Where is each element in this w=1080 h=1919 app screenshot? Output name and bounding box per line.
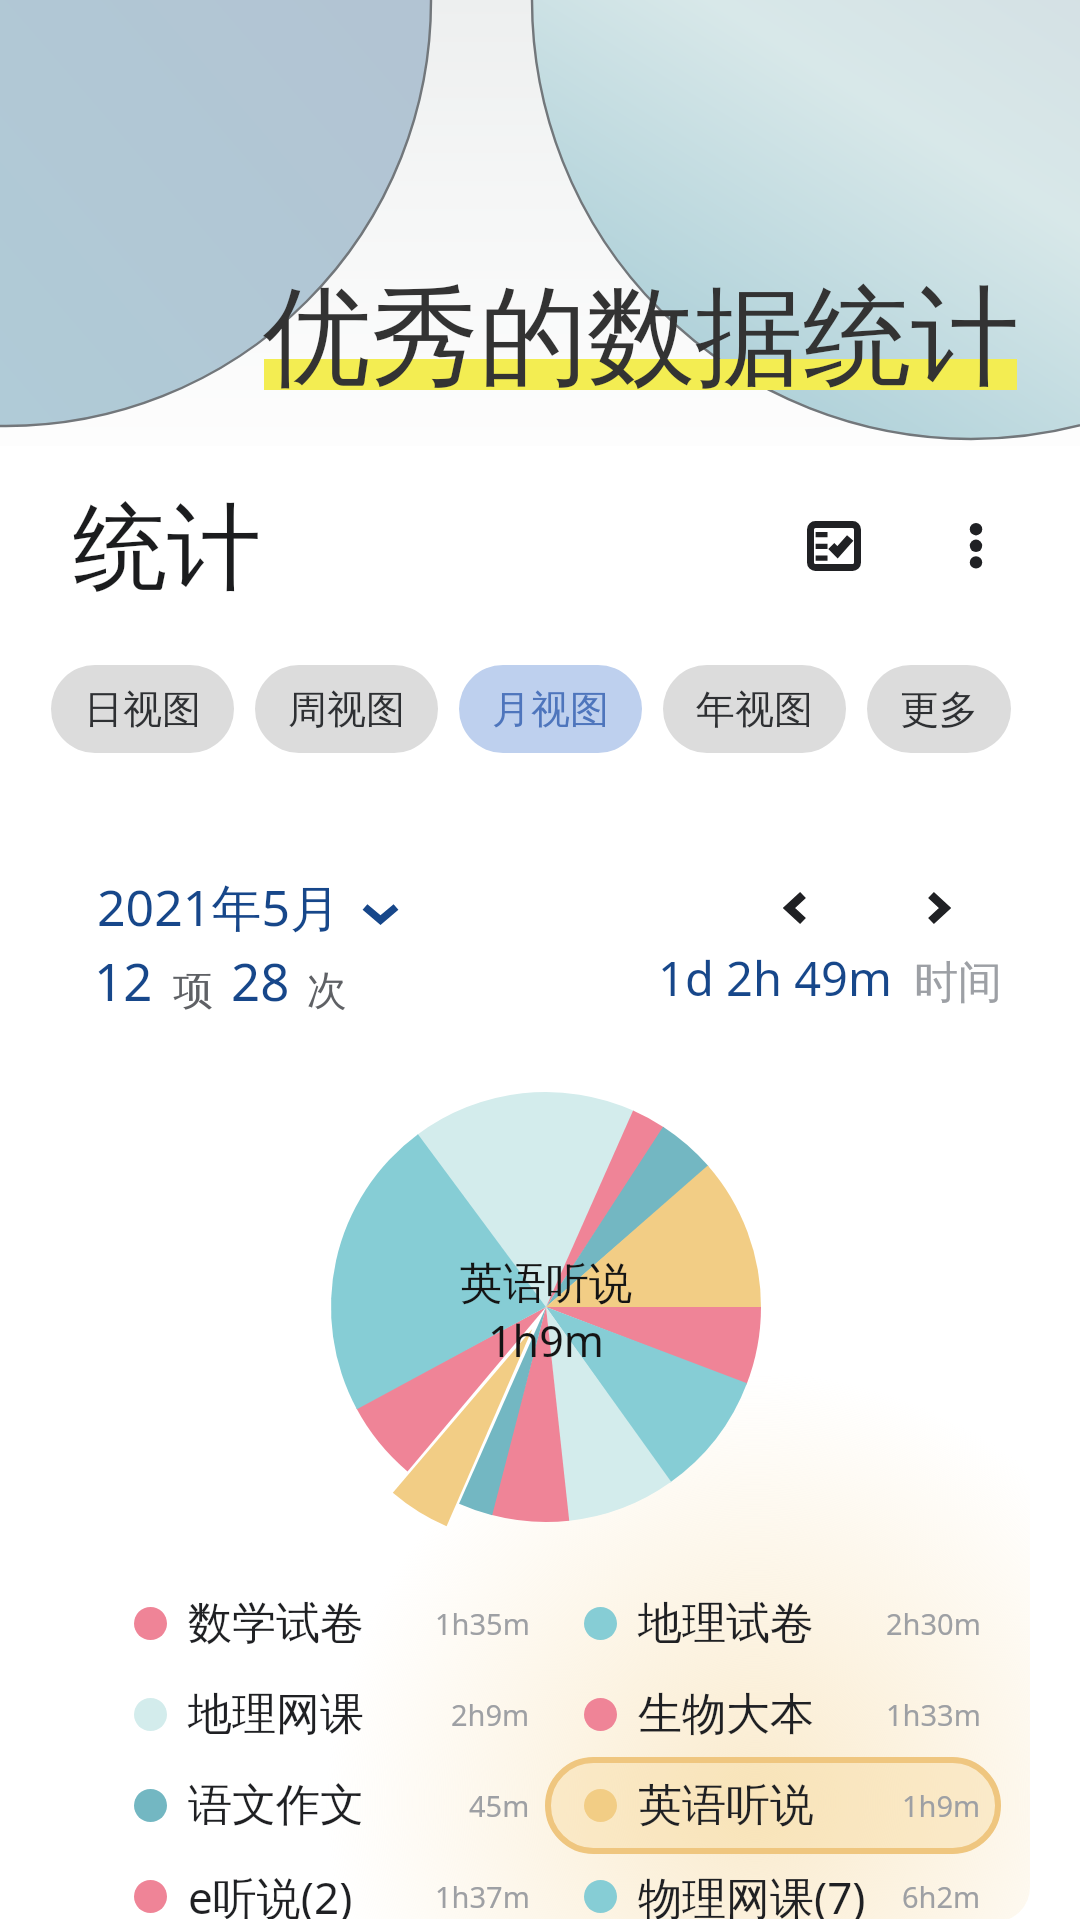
- staticText: 2h9m: [451, 1695, 530, 1734]
- staticText: 月视图: [492, 685, 609, 734]
- staticText: 日视图: [84, 685, 201, 734]
- staticText: 6h2m: [902, 1877, 981, 1916]
- staticText: 次: [307, 965, 347, 1015]
- button[interactable]: 物理网课(7): [567, 1851, 1018, 1919]
- button[interactable]: Task list: [780, 518, 888, 626]
- button[interactable]: Previous month: [746, 858, 846, 958]
- staticText: 年视图: [696, 685, 813, 734]
- staticText: 统计: [73, 489, 261, 607]
- staticText: e听说(2): [188, 1867, 353, 1919]
- staticText: 物理网课(7): [638, 1867, 866, 1919]
- button[interactable]: 生物大本: [567, 1669, 1018, 1760]
- staticText: 2021年5月: [97, 873, 340, 941]
- staticText: 周视图: [288, 685, 405, 734]
- staticText: 语文作文: [188, 1778, 364, 1833]
- staticText: 生物大本: [638, 1687, 814, 1742]
- staticText: 1h35m: [435, 1604, 530, 1643]
- button[interactable]: 地理试卷: [567, 1578, 1018, 1669]
- staticText: 地理网课: [188, 1687, 364, 1742]
- staticText: 项: [173, 965, 213, 1015]
- button[interactable]: 月视图: [459, 665, 642, 753]
- staticText: 地理试卷: [638, 1596, 814, 1651]
- button[interactable]: 年视图: [663, 665, 846, 753]
- button[interactable]: 语文作文: [117, 1760, 567, 1851]
- staticText: 英语听说: [638, 1778, 814, 1833]
- staticText: 1h9m: [902, 1786, 981, 1825]
- staticText: 12: [94, 946, 153, 1015]
- staticText: 时间: [914, 955, 1002, 1010]
- staticText: 45m: [469, 1786, 530, 1825]
- button[interactable]: 地理网课: [117, 1669, 567, 1760]
- button[interactable]: 数学试卷: [117, 1578, 567, 1669]
- button[interactable]: 英语听说: [567, 1760, 1018, 1851]
- staticText: 1h9m: [488, 1311, 604, 1370]
- staticText: 2h30m: [886, 1604, 981, 1643]
- button[interactable]: More options: [922, 521, 1030, 629]
- staticText: 1h37m: [435, 1877, 530, 1916]
- button[interactable]: 周视图: [255, 665, 438, 753]
- staticText: 1d 2h 49m: [658, 946, 892, 1010]
- button[interactable]: Next month: [888, 858, 988, 958]
- staticText: 优秀的数据统计: [263, 270, 1019, 406]
- staticText: 1h33m: [886, 1695, 981, 1734]
- staticText: 英语听说: [460, 1257, 632, 1311]
- staticText: 更多: [900, 685, 978, 734]
- button[interactable]: 2021年5月: [97, 873, 396, 941]
- staticText: 28: [231, 946, 290, 1015]
- button[interactable]: e听说(2): [117, 1851, 567, 1919]
- button[interactable]: 日视图: [51, 665, 234, 753]
- staticText: 数学试卷: [188, 1596, 364, 1651]
- button[interactable]: 更多: [867, 665, 1011, 753]
